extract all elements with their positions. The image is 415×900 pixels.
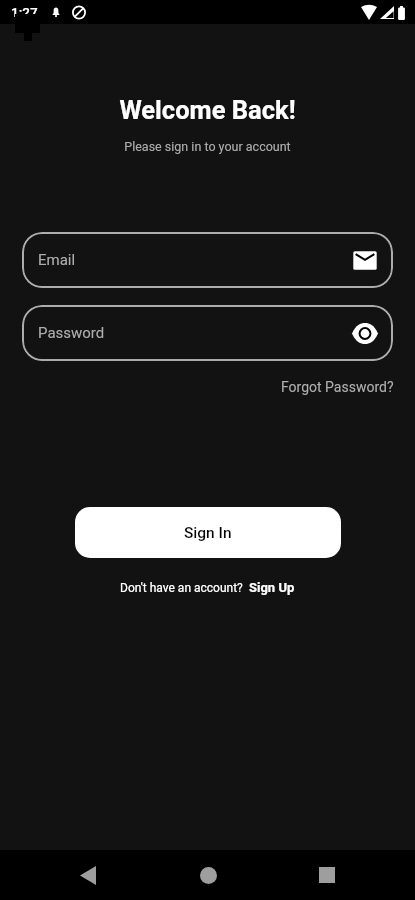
button[interactable]: Password xyxy=(22,305,393,361)
button[interactable]: Recent apps xyxy=(303,851,351,899)
staticText: Sign In xyxy=(184,524,232,542)
staticText: Email xyxy=(38,251,76,269)
staticText: 1:27 xyxy=(11,4,38,20)
button[interactable]: Forgot Password? xyxy=(281,379,394,395)
staticText: Please sign in to your account xyxy=(0,139,415,154)
staticText: Password xyxy=(38,324,105,342)
staticText: Forgot Password? xyxy=(281,379,394,395)
staticText: Don't have an account? xyxy=(120,581,243,595)
button[interactable]: Sign In xyxy=(75,507,341,558)
button[interactable]: Home xyxy=(184,851,232,899)
button[interactable]: Back xyxy=(64,851,112,899)
staticText: Sign Up xyxy=(249,580,295,595)
button[interactable]: Sign Up xyxy=(249,580,295,595)
button[interactable]: Email xyxy=(22,232,393,288)
staticText: Welcome Back! xyxy=(0,95,415,125)
